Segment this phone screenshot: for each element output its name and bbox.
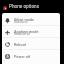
staticText: Radios are off — [14, 33, 31, 36]
button[interactable]: Reboot — [2, 38, 60, 50]
button[interactable]: Power off — [2, 50, 60, 62]
staticText: Power off — [14, 54, 31, 58]
staticText: Silent mode — [14, 17, 35, 21]
button[interactable]: Airplane mode — [2, 26, 60, 38]
staticText: Sound is on — [14, 21, 28, 24]
button[interactable]: Silent mode — [2, 14, 60, 26]
staticText: Phone options — [9, 4, 40, 10]
button[interactable]: Emergency — [3, 6, 7, 10]
staticText: Reboot — [14, 42, 27, 46]
staticText: Airplane mode — [14, 29, 39, 33]
